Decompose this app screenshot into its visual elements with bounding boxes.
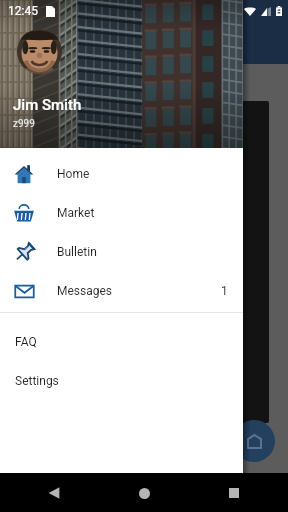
staticText: Market xyxy=(57,206,228,220)
button[interactable]: Messages xyxy=(0,271,243,310)
button[interactable]: Home xyxy=(0,154,243,193)
button[interactable]: Bulletin xyxy=(0,232,243,271)
button[interactable]: FAQ xyxy=(0,322,243,361)
staticText: FAQ xyxy=(15,335,37,349)
staticText: 12:45 xyxy=(8,4,38,18)
staticText: Jim Smith xyxy=(13,96,82,114)
staticText: Settings xyxy=(15,374,59,388)
staticText: 1 xyxy=(221,284,228,298)
button[interactable]: Recents xyxy=(220,479,248,507)
staticText: Home xyxy=(57,167,228,181)
button[interactable]: Market xyxy=(0,193,243,232)
staticText: Messages xyxy=(57,284,221,298)
button[interactable]: Home xyxy=(130,479,158,507)
staticText: Bulletin xyxy=(57,245,228,259)
staticText: z999 xyxy=(13,118,35,130)
button[interactable]: Add item xyxy=(233,420,275,462)
button[interactable]: Back xyxy=(40,479,68,507)
button[interactable]: Settings xyxy=(0,361,243,400)
